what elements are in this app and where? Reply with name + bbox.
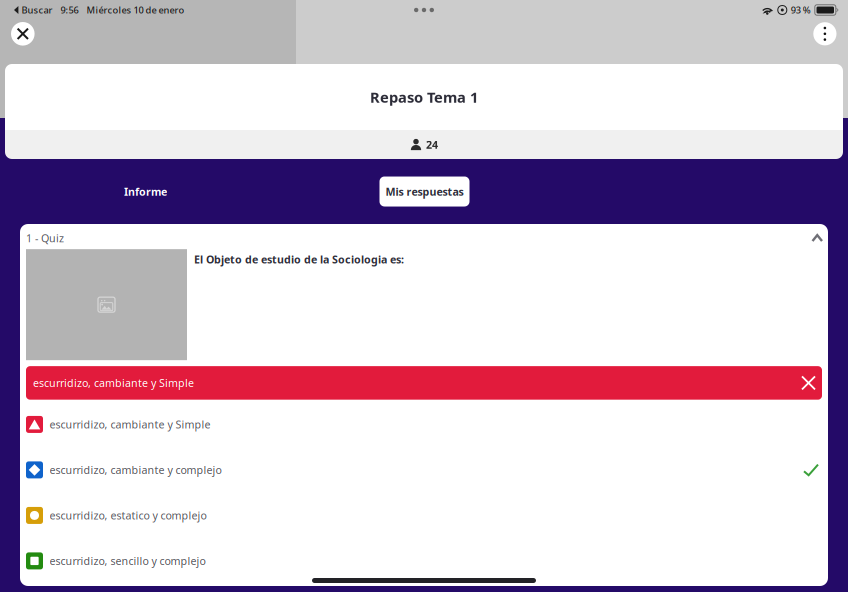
staticText: escurridizo, sencillo y complejo (49, 554, 205, 568)
staticText: 1 - Quiz (26, 231, 64, 245)
staticText: El Objeto de estudio de la Sociologia es… (194, 252, 404, 266)
button[interactable]: escurridizo, cambiante y Simple (20, 402, 828, 447)
staticText: 9:56 (60, 4, 78, 16)
staticText: Mis respuestas (385, 184, 463, 199)
staticText: Repaso Tema 1 (370, 87, 478, 107)
staticText: 93 % (791, 4, 811, 16)
button[interactable]: Mis respuestas (285, 176, 564, 206)
button[interactable]: escurridizo, estatico y complejo (20, 493, 828, 538)
button[interactable]: Informe (6, 176, 285, 206)
staticText: Buscar (21, 4, 52, 16)
staticText: Miércoles 10 de enero (86, 4, 184, 16)
staticText: escurridizo, cambiante y complejo (49, 463, 221, 477)
staticText: escurridizo, cambiante y Simple (49, 417, 210, 431)
button[interactable]: Contraer (808, 231, 826, 245)
button[interactable]: Más opciones (813, 22, 836, 45)
button[interactable]: Cerrar (11, 22, 35, 46)
staticText: 24 (426, 137, 438, 152)
button[interactable]: escurridizo, sencillo y complejo (20, 538, 828, 584)
button[interactable]: escurridizo, cambiante y complejo (20, 447, 828, 493)
staticText: escurridizo, estatico y complejo (49, 508, 206, 522)
staticText: escurridizo, cambiante y Simple (33, 376, 194, 390)
staticText: Informe (124, 184, 167, 199)
